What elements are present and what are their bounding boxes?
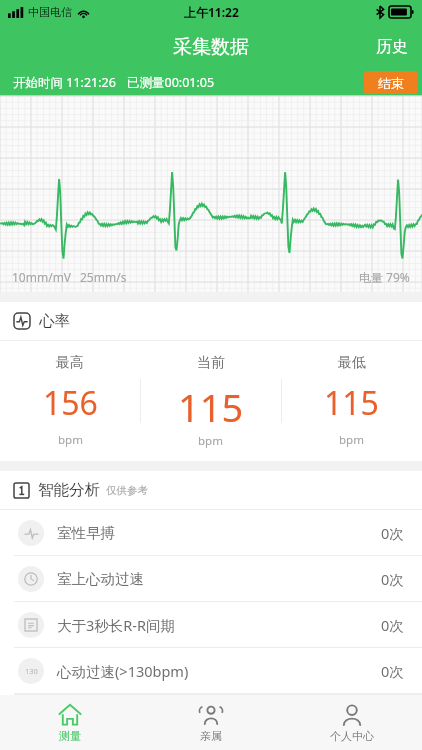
- staticText: 156: [43, 381, 98, 425]
- button[interactable]: 室性早搏: [0, 510, 422, 556]
- button[interactable]: 个人中心: [281, 695, 422, 750]
- staticText: 115: [178, 381, 244, 433]
- button[interactable]: 亲属: [140, 695, 281, 750]
- staticText: 10mm/mV: [12, 269, 72, 285]
- staticText: 0次: [381, 523, 404, 543]
- button[interactable]: 结束: [364, 71, 418, 94]
- staticText: 室上心动过速: [57, 570, 144, 588]
- staticText: 25mm/s: [80, 269, 127, 285]
- staticText: 中国电信: [28, 5, 72, 19]
- staticText: 当前: [197, 354, 225, 372]
- staticText: 亲属: [200, 729, 222, 743]
- button[interactable]: 历史: [362, 29, 422, 65]
- staticText: 心动过速(>130bpm): [57, 661, 189, 681]
- staticText: 已测量00:01:05: [127, 74, 215, 91]
- staticText: 上午11:22: [184, 4, 239, 20]
- staticText: 115: [324, 381, 379, 425]
- staticText: 心率: [39, 311, 70, 331]
- staticText: 智能分析: [38, 480, 100, 500]
- staticText: 0次: [381, 569, 404, 589]
- staticText: 仅供参考: [106, 484, 148, 497]
- staticText: bpm: [339, 432, 364, 448]
- staticText: 电量 79%: [359, 269, 410, 285]
- staticText: bpm: [198, 433, 223, 449]
- button[interactable]: 室上心动过速: [0, 556, 422, 602]
- staticText: 130: [25, 666, 38, 676]
- staticText: bpm: [58, 432, 83, 448]
- button[interactable]: 大于3秒长R-R间期: [0, 602, 422, 648]
- staticText: 测量: [59, 729, 81, 743]
- staticText: 大于3秒长R-R间期: [57, 615, 176, 635]
- staticText: 最低: [338, 354, 366, 372]
- staticText: 最高: [56, 354, 84, 372]
- staticText: 0次: [381, 615, 404, 635]
- button[interactable]: 测量: [0, 695, 140, 750]
- staticText: 个人中心: [330, 729, 374, 743]
- staticText: 开始时间 11:21:26: [13, 74, 116, 91]
- staticText: 结束: [378, 75, 404, 91]
- staticText: 采集数据: [173, 35, 249, 59]
- button[interactable]: 130: [0, 648, 422, 694]
- staticText: 室性早搏: [57, 524, 115, 542]
- staticText: 0次: [381, 661, 404, 681]
- staticText: 历史: [376, 37, 408, 57]
